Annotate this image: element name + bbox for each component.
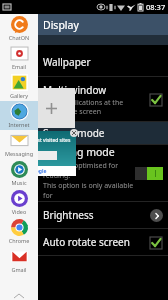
button[interactable]: Brightness <box>150 209 163 222</box>
staticText: Brightness <box>43 208 150 222</box>
button[interactable]: Multi window <box>38 77 168 121</box>
staticText: Show applications at the side of the scr… <box>43 98 124 116</box>
button[interactable]: Messaging <box>0 130 38 159</box>
button[interactable]: Internet <box>0 101 38 130</box>
staticText: 08:37 <box>146 2 166 12</box>
button[interactable]: Chrome <box>0 217 38 246</box>
staticText: Internet <box>0 121 38 128</box>
button[interactable]: Multi window enabled <box>148 92 163 107</box>
button[interactable]: Email <box>0 43 38 72</box>
staticText: Gallery <box>0 92 38 99</box>
button[interactable]: Music <box>0 159 38 188</box>
button[interactable]: Auto rotate screen <box>38 229 168 255</box>
button[interactable]: Reading mode on <box>135 167 163 180</box>
staticText: Wallpaper <box>43 55 91 69</box>
staticText: Gmail <box>0 266 38 273</box>
staticText: Display <box>43 18 79 32</box>
button[interactable]: New tab <box>27 88 75 128</box>
staticText: Screen is optimised for reading. This op… <box>43 161 135 201</box>
button[interactable]: Display <box>38 14 168 35</box>
button[interactable]: Gallery <box>0 72 38 101</box>
staticText: Music <box>0 179 38 186</box>
staticText: Chrome <box>0 237 38 244</box>
button[interactable]: Reading mode <box>38 145 168 201</box>
staticText: Video <box>0 208 38 215</box>
button[interactable]: Gmail <box>0 246 38 275</box>
staticText: Reading mode <box>43 145 115 159</box>
button[interactable]: Brightness <box>38 202 168 228</box>
staticText: Email <box>0 63 38 70</box>
button[interactable]: Auto rotate enabled <box>148 235 163 250</box>
button[interactable]: Video <box>0 188 38 217</box>
staticText: Most visited sites <box>30 137 71 144</box>
button[interactable]: Most visited sites <box>27 131 76 176</box>
staticText: Google <box>29 168 47 175</box>
staticText: Auto rotate screen <box>43 235 148 249</box>
staticText: Screen mode <box>43 126 105 140</box>
button[interactable]: Close tab <box>70 129 78 137</box>
staticText: Messaging <box>0 150 38 157</box>
button[interactable]: ChatON <box>0 14 38 43</box>
staticText: ChatON <box>0 34 38 41</box>
button[interactable]: Wallpaper <box>38 48 168 76</box>
button[interactable]: Screen mode <box>38 122 168 144</box>
staticText: Multi window <box>43 83 107 97</box>
